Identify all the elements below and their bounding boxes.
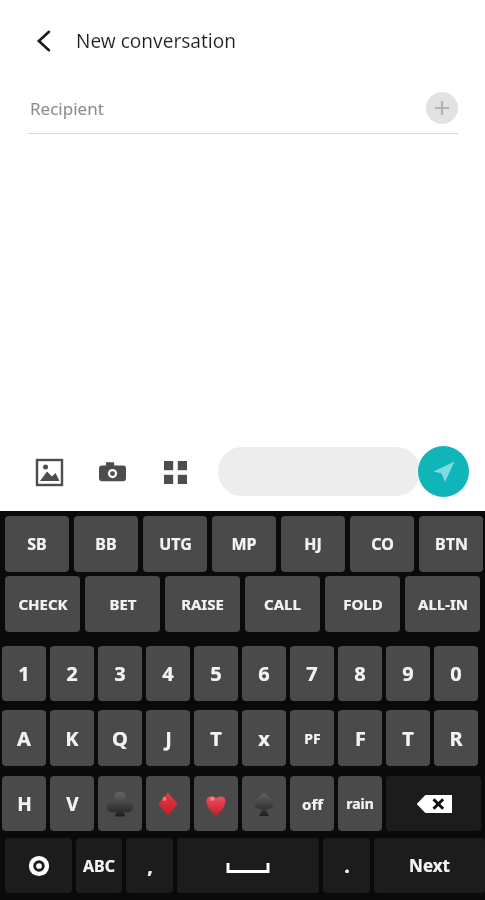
button[interactable]: x xyxy=(242,710,286,766)
button[interactable]: CALL xyxy=(245,576,320,632)
button[interactable]: ALL-IN xyxy=(405,576,480,632)
staticText: 3 xyxy=(114,660,126,687)
staticText: Recipient xyxy=(30,97,104,120)
staticText: x xyxy=(258,725,270,752)
button[interactable]: Spades xyxy=(242,776,286,831)
button[interactable]: UTG xyxy=(143,516,207,572)
button[interactable]: ABC xyxy=(76,838,122,893)
button[interactable]: 0 xyxy=(434,646,478,701)
button[interactable]: J xyxy=(146,710,190,766)
button[interactable]: CHECK xyxy=(5,576,80,632)
staticText: T xyxy=(402,725,414,752)
button[interactable]: BET xyxy=(85,576,160,632)
staticText: BET xyxy=(109,594,137,614)
staticText: ALL-IN xyxy=(418,594,468,614)
button[interactable]: R xyxy=(434,710,478,766)
button[interactable]: 2 xyxy=(50,646,94,701)
button[interactable]: K xyxy=(50,710,94,766)
staticText: SB xyxy=(27,533,47,555)
button[interactable]: T xyxy=(386,710,430,766)
button[interactable]: A xyxy=(2,710,46,766)
staticText: HJ xyxy=(304,533,322,555)
button[interactable]: F xyxy=(338,710,382,766)
button[interactable]: CO xyxy=(350,516,414,572)
button[interactable]: off xyxy=(290,776,334,831)
button[interactable]: Settings xyxy=(5,838,72,893)
staticText: R xyxy=(449,725,463,752)
staticText: FOLD xyxy=(343,594,383,614)
staticText: CO xyxy=(371,533,394,555)
button[interactable]: Send xyxy=(418,446,469,497)
button[interactable]: 8 xyxy=(338,646,382,701)
button[interactable]: Next xyxy=(374,838,485,893)
staticText: Q xyxy=(112,725,128,752)
staticText: H xyxy=(17,791,32,817)
staticText: PF xyxy=(304,729,321,748)
staticText: . xyxy=(344,852,350,879)
staticText: K xyxy=(65,725,79,752)
staticText: 1 xyxy=(18,660,30,687)
staticText: V xyxy=(66,791,79,817)
button[interactable]: Message input xyxy=(218,447,420,496)
button[interactable]: Space xyxy=(177,838,319,893)
button[interactable]: More apps xyxy=(153,450,197,494)
button[interactable]: Back xyxy=(22,18,68,64)
staticText: BTN xyxy=(435,533,468,555)
staticText: 7 xyxy=(306,660,318,687)
button[interactable]: V xyxy=(50,776,94,831)
button[interactable]: Backspace xyxy=(386,776,481,831)
staticText: BB xyxy=(95,533,117,555)
staticText: 4 xyxy=(162,660,174,687)
staticText: UTG xyxy=(159,533,192,555)
staticText: RAISE xyxy=(181,594,224,614)
button[interactable]: , xyxy=(126,838,173,893)
button[interactable]: 6 xyxy=(242,646,286,701)
staticText: MP xyxy=(231,533,257,555)
button[interactable]: Camera xyxy=(90,450,134,494)
button[interactable]: PF xyxy=(290,710,334,766)
button[interactable]: Hearts xyxy=(194,776,238,831)
staticText: New conversation xyxy=(76,28,236,54)
button[interactable]: . xyxy=(323,838,370,893)
staticText: 2 xyxy=(66,660,78,687)
button[interactable]: Gallery xyxy=(27,450,71,494)
staticText: 0 xyxy=(450,660,462,687)
staticText: 6 xyxy=(258,660,270,687)
staticText: , xyxy=(147,852,153,879)
staticText: 8 xyxy=(354,660,366,687)
button[interactable]: FOLD xyxy=(325,576,400,632)
button[interactable]: Clubs xyxy=(98,776,142,831)
staticText: Next xyxy=(409,854,450,877)
button[interactable]: 5 xyxy=(194,646,238,701)
button[interactable]: T xyxy=(194,710,238,766)
button[interactable]: Add recipient xyxy=(426,92,458,124)
button[interactable]: rain xyxy=(338,776,382,831)
staticText: T xyxy=(210,725,222,752)
staticText: CALL xyxy=(264,594,301,614)
staticText: F xyxy=(355,725,366,752)
button[interactable]: Q xyxy=(98,710,142,766)
button[interactable]: 1 xyxy=(2,646,46,701)
staticText: A xyxy=(17,725,31,752)
button[interactable]: 4 xyxy=(146,646,190,701)
staticText: J xyxy=(165,725,172,752)
button[interactable]: 7 xyxy=(290,646,334,701)
button[interactable]: SB xyxy=(5,516,69,572)
button[interactable]: BTN xyxy=(419,516,483,572)
staticText: 5 xyxy=(210,660,222,687)
staticText: rain xyxy=(346,794,374,813)
staticText: CHECK xyxy=(18,594,68,614)
staticText: 9 xyxy=(402,660,414,687)
staticText: off xyxy=(302,794,323,814)
button[interactable]: 3 xyxy=(98,646,142,701)
button[interactable]: HJ xyxy=(281,516,345,572)
button[interactable]: BB xyxy=(74,516,138,572)
button[interactable]: H xyxy=(2,776,46,831)
button[interactable]: Diamonds xyxy=(146,776,190,831)
button[interactable]: MP xyxy=(212,516,276,572)
button[interactable]: 9 xyxy=(386,646,430,701)
button[interactable]: RAISE xyxy=(165,576,240,632)
staticText: ABC xyxy=(83,855,115,877)
